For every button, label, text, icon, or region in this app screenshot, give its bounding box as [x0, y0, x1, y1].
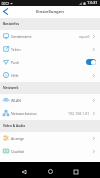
staticText: WLAN: [11, 98, 21, 103]
staticText: 192.168.1.81: [68, 111, 90, 116]
button[interactable]: Hilfe: [0, 69, 100, 82]
button[interactable]: Recent apps: [66, 165, 86, 178]
staticText: Netzwerk: [3, 86, 19, 90]
button[interactable]: Back: [0, 6, 11, 17]
staticText: Push: [11, 60, 20, 65]
button[interactable]: Teilen: [0, 43, 100, 56]
button[interactable]: Back: [14, 165, 34, 178]
staticText: 13:31: [87, 0, 98, 6]
button[interactable]: Gerätename: [0, 30, 100, 43]
staticText: Einstellungen: [36, 9, 64, 15]
staticText: Anzeige: [11, 136, 25, 141]
staticText: Qualität: [11, 149, 25, 154]
staticText: Netzwerkstatus: [11, 111, 37, 116]
staticText: Gerätename: [11, 34, 32, 39]
staticText: Basisinfos: [3, 22, 20, 26]
staticText: Video & Audio: [3, 124, 26, 128]
button[interactable]: Qualität: [0, 145, 100, 158]
button[interactable]: Netzwerkstatus: [0, 107, 100, 120]
button[interactable]: Push: [0, 56, 100, 69]
button[interactable]: Anzeige: [0, 132, 100, 145]
staticText: Teilen: [11, 47, 21, 52]
button[interactable]: WLAN: [0, 94, 100, 107]
staticText: aqua5: [79, 34, 90, 39]
button[interactable]: Home: [40, 165, 60, 178]
staticText: Hilfe: [11, 73, 19, 78]
